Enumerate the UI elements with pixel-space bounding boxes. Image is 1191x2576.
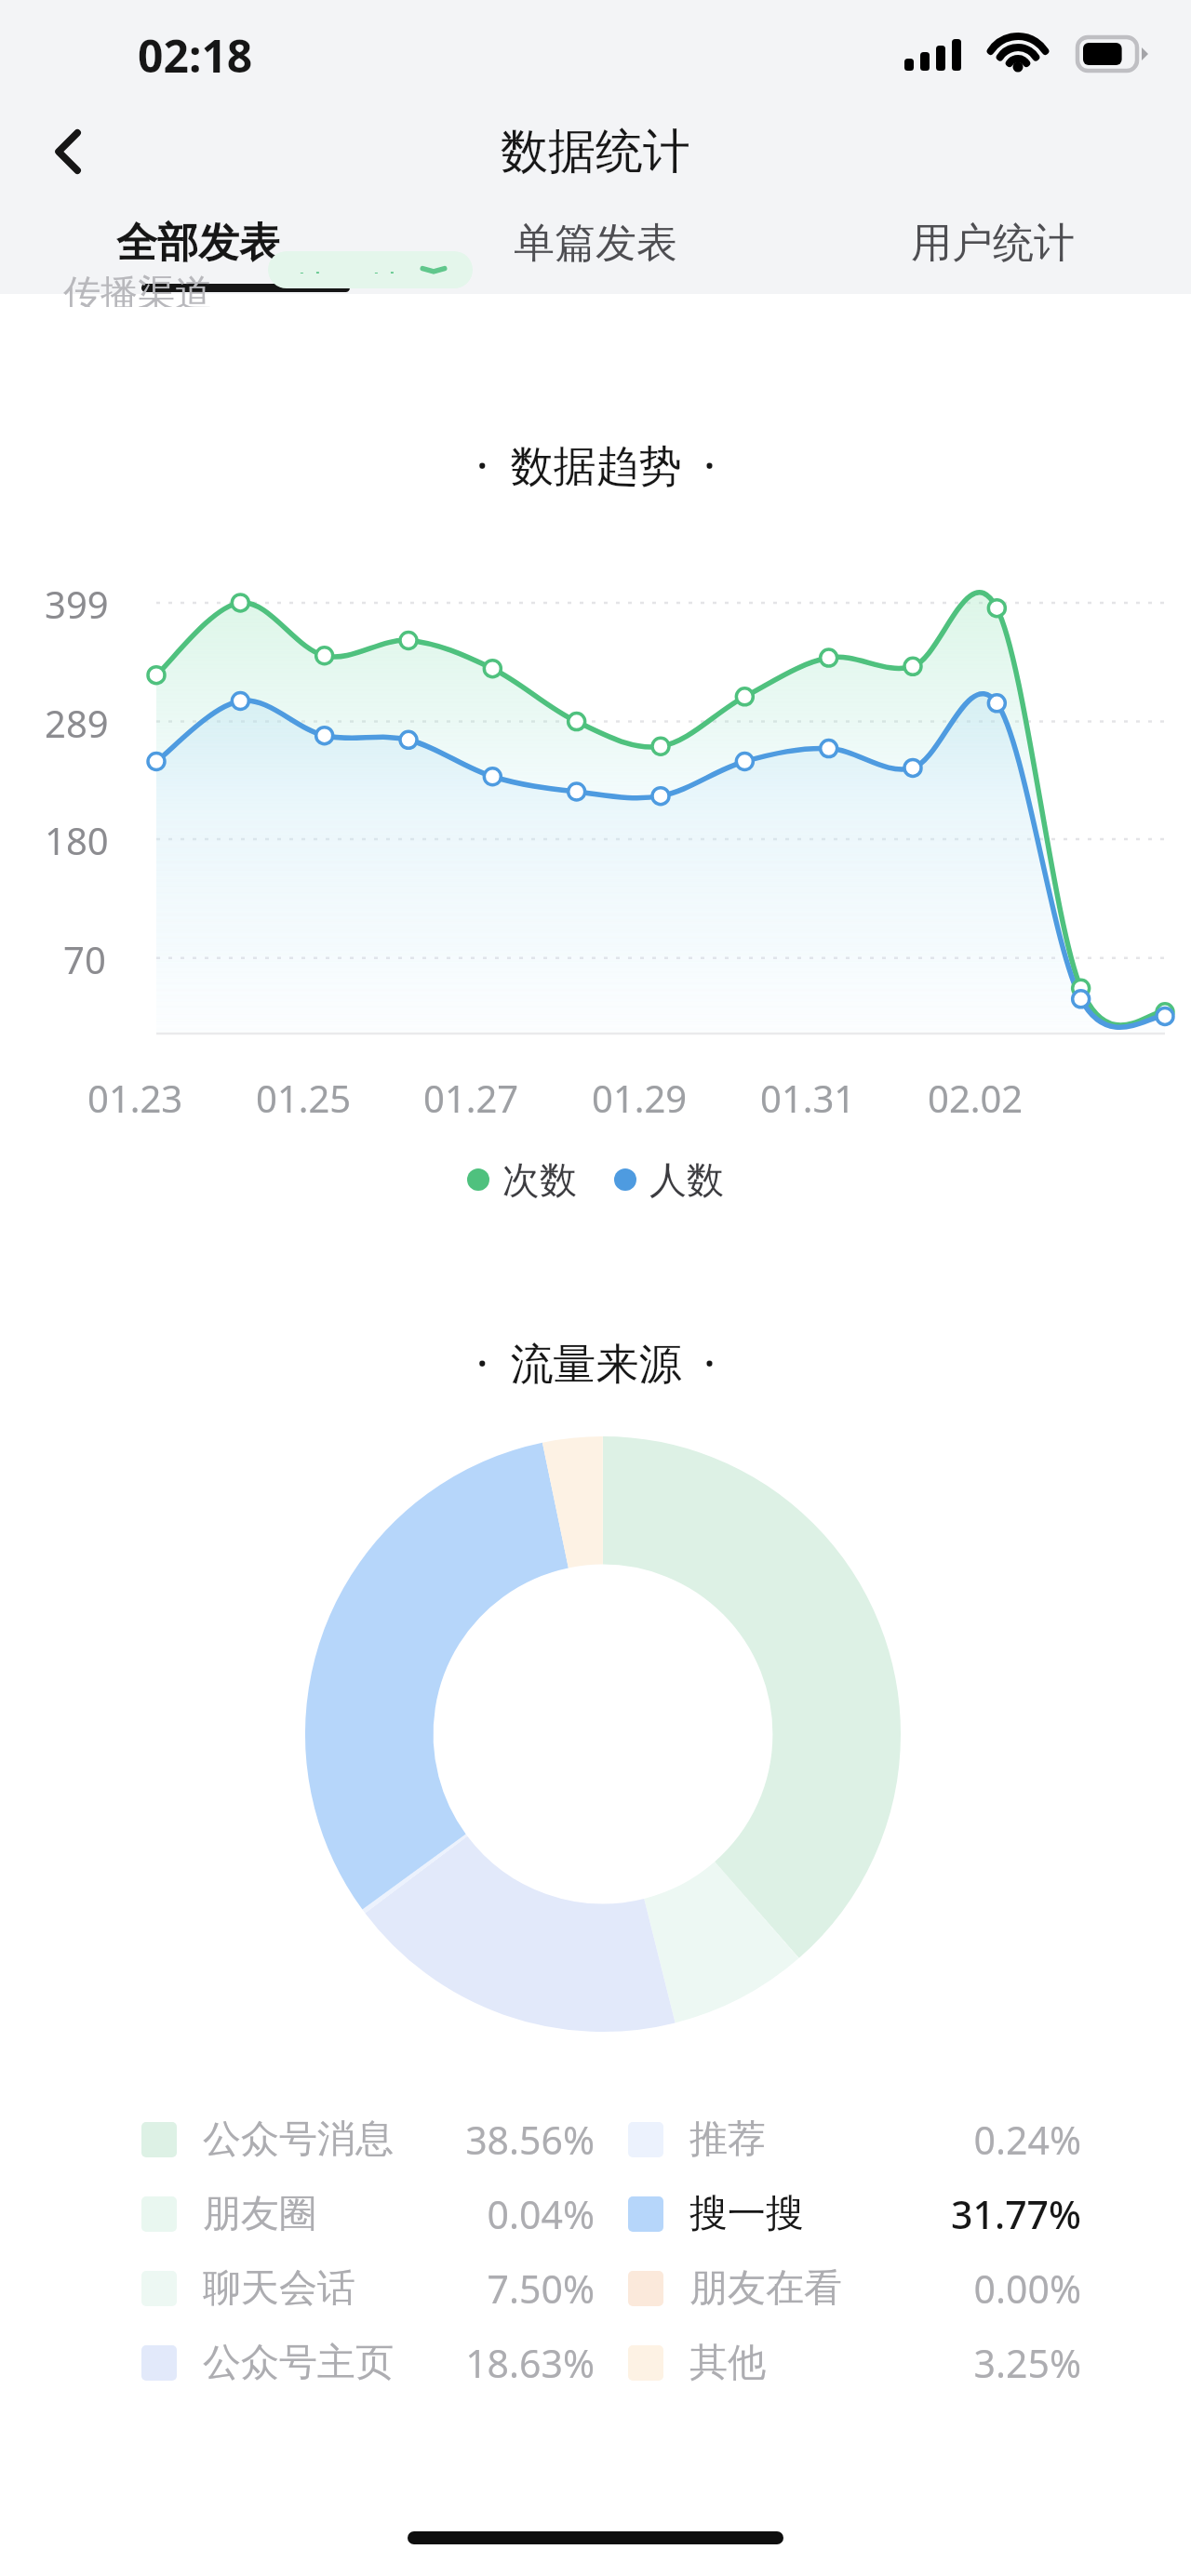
staticText: · 流量来源 · xyxy=(476,1333,716,1392)
staticText: 聊天会话 xyxy=(203,2264,355,2313)
staticText: 朋友圈 xyxy=(203,2190,317,2238)
staticText: 人数 xyxy=(649,1156,724,1203)
button[interactable]: 全部发表 xyxy=(0,201,396,294)
staticText: 180 xyxy=(45,815,109,865)
staticText: 3.25% xyxy=(973,2337,1081,2389)
staticText: 其他 xyxy=(689,2339,766,2387)
staticText: 01.23 xyxy=(87,1073,183,1123)
button[interactable]: 次数 xyxy=(467,1156,577,1203)
button[interactable]: 公众号消息 xyxy=(141,2102,595,2177)
staticText: 传播渠道 xyxy=(63,270,212,307)
staticText: 02:18 xyxy=(138,25,253,86)
button[interactable]: 朋友在看 xyxy=(628,2251,1081,2326)
button[interactable]: 搜一搜 xyxy=(268,251,473,288)
staticText: 01.27 xyxy=(423,1073,519,1123)
staticText: 数据统计 xyxy=(501,122,690,181)
staticText: · 数据趋势 · xyxy=(476,435,716,494)
button[interactable]: 用户统计 xyxy=(794,201,1191,294)
staticText: 搜一搜 xyxy=(294,266,406,274)
button[interactable]: 搜一搜 xyxy=(628,2177,1081,2251)
staticText: 38.56% xyxy=(465,2114,595,2166)
staticText: 01.25 xyxy=(256,1073,352,1123)
staticText: 289 xyxy=(45,698,109,748)
staticText: 公众号主页 xyxy=(203,2339,394,2387)
button[interactable]: 公众号主页 xyxy=(141,2326,595,2400)
staticText: 01.29 xyxy=(592,1073,688,1123)
staticText: 70 xyxy=(63,934,106,984)
staticText: 31.77% xyxy=(951,2188,1081,2240)
staticText: 0.00% xyxy=(973,2262,1081,2315)
button[interactable]: 推荐 xyxy=(628,2102,1081,2177)
button[interactable]: 朋友圈 xyxy=(141,2177,595,2251)
button[interactable]: Back xyxy=(24,107,114,196)
staticText: 单篇发表 xyxy=(514,218,677,269)
staticText: 全部发表 xyxy=(116,218,280,269)
staticText: 次数 xyxy=(502,1156,577,1203)
button[interactable]: 其他 xyxy=(628,2326,1081,2400)
staticText: 01.31 xyxy=(760,1073,856,1123)
staticText: 399 xyxy=(45,579,109,629)
staticText: 0.24% xyxy=(973,2114,1081,2166)
staticText: 18.63% xyxy=(465,2337,595,2389)
staticText: 0.04% xyxy=(487,2188,595,2240)
staticText: 用户统计 xyxy=(911,218,1075,269)
button[interactable]: 聊天会话 xyxy=(141,2251,595,2326)
staticText: 搜一搜 xyxy=(689,2190,804,2238)
staticText: 7.50% xyxy=(487,2262,595,2315)
staticText: 02.02 xyxy=(928,1073,1024,1123)
staticText: 公众号消息 xyxy=(203,2116,394,2164)
staticText: 朋友在看 xyxy=(689,2264,842,2313)
button[interactable]: 单篇发表 xyxy=(396,201,794,294)
staticText: 推荐 xyxy=(689,2116,766,2164)
button[interactable]: 人数 xyxy=(614,1156,724,1203)
